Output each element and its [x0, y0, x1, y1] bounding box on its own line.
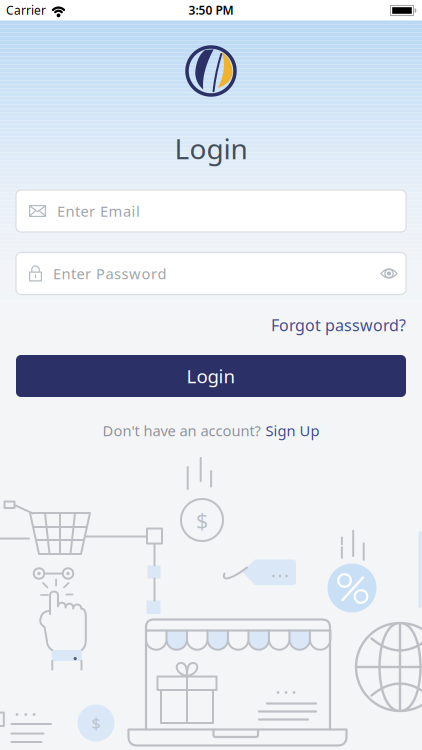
button[interactable]: Enter Email [16, 190, 406, 232]
staticText: Carrier [6, 2, 46, 18]
staticText: $ [91, 712, 100, 734]
staticText: Enter Email [57, 201, 140, 221]
button[interactable]: Sign Up [265, 421, 319, 440]
staticText: Enter Password [53, 264, 166, 283]
staticText: Forgot password? [271, 314, 406, 336]
staticText: 3:50 PM [188, 2, 233, 18]
button[interactable]: Enter Password [16, 252, 406, 294]
button[interactable]: Login [16, 355, 406, 397]
staticText: Login [174, 130, 247, 167]
staticText: $ [196, 506, 208, 535]
button[interactable]: Forgot password? [271, 314, 406, 336]
staticText: Sign Up [265, 421, 319, 440]
staticText: Don't have an account? [102, 421, 260, 440]
staticText: Login [186, 364, 235, 388]
button[interactable]: Show password [374, 261, 403, 285]
